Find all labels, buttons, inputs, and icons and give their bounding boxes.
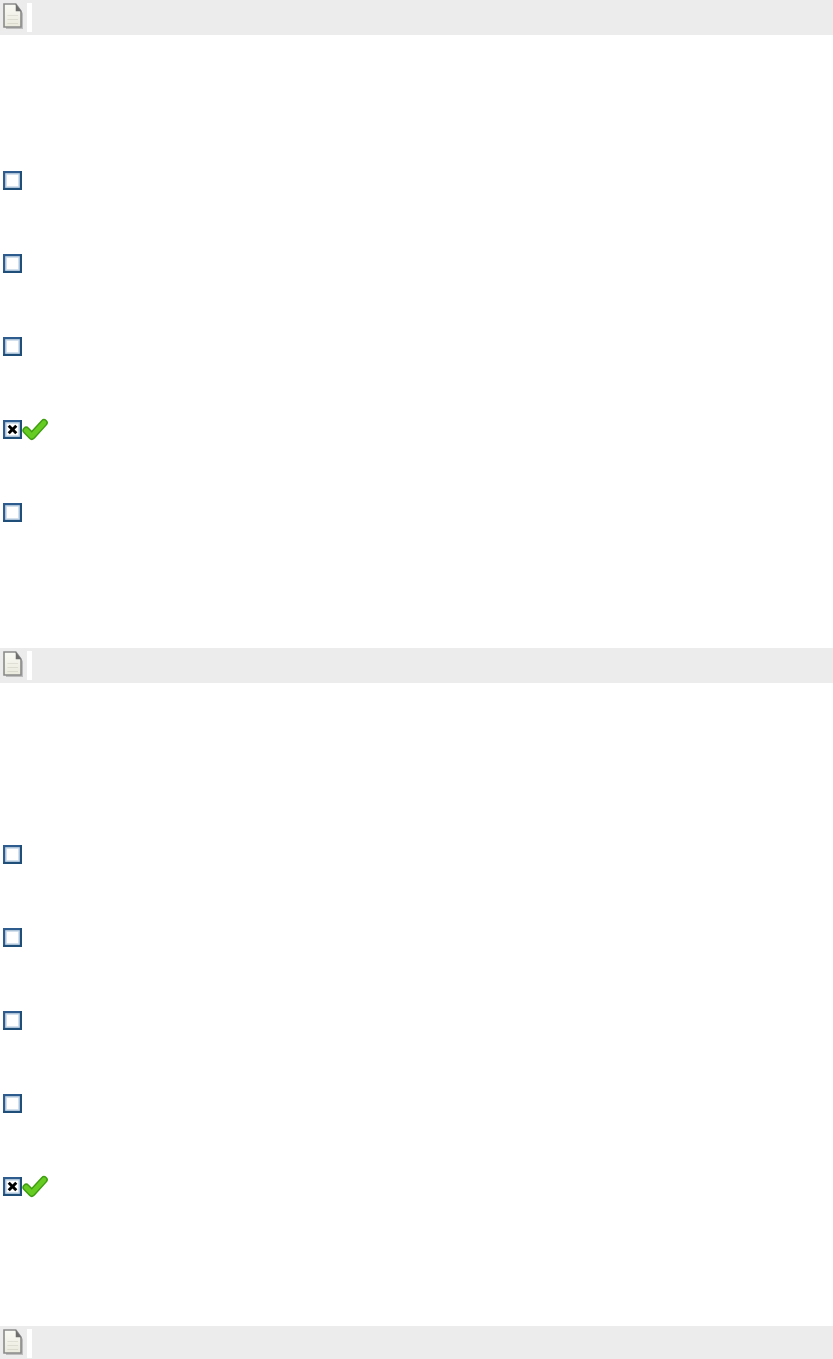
button[interactable]: Unchecked option bbox=[0, 171, 833, 190]
button[interactable]: Document section bbox=[0, 0, 833, 35]
button[interactable]: Document section bbox=[0, 1326, 833, 1359]
button[interactable]: Document section bbox=[0, 648, 833, 683]
button[interactable]: Unchecked option bbox=[0, 337, 833, 356]
button[interactable]: Unchecked option bbox=[0, 845, 833, 864]
button[interactable]: Unchecked option bbox=[0, 1011, 833, 1030]
other: Document section bbox=[4, 652, 23, 677]
other: Document section bbox=[4, 4, 23, 29]
button[interactable]: Unchecked option bbox=[0, 928, 833, 947]
other: Document section bbox=[4, 1330, 23, 1355]
button[interactable]: Checked option bbox=[0, 420, 833, 439]
button[interactable]: Unchecked option bbox=[0, 254, 833, 273]
button[interactable]: Unchecked option bbox=[0, 1094, 833, 1113]
button[interactable]: Checked option bbox=[0, 1177, 833, 1196]
button[interactable]: Unchecked option bbox=[0, 503, 833, 522]
